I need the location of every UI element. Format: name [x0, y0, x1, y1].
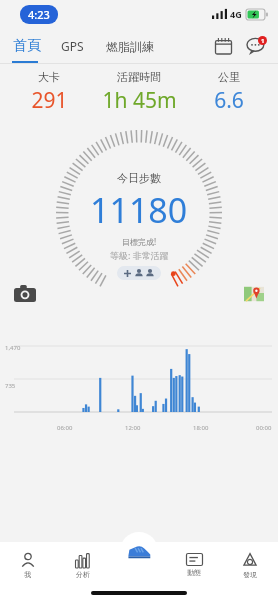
staticText: 1,470 — [5, 344, 21, 352]
staticText: 等級: 非常活躍 — [110, 249, 169, 261]
staticText: 公里 — [218, 70, 240, 84]
button[interactable]: 活躍時間 — [90, 70, 188, 115]
staticText: 735 — [5, 382, 16, 390]
button[interactable]: 我 — [0, 542, 55, 588]
staticText: 291 — [31, 86, 68, 115]
button[interactable]: Start workout — [120, 532, 158, 570]
staticText: 1 — [261, 37, 265, 45]
staticText: 分析 — [76, 570, 90, 579]
button[interactable]: 首頁 — [10, 33, 44, 59]
button[interactable]: Messages — [242, 31, 272, 61]
button[interactable]: 大卡 — [8, 70, 90, 115]
button[interactable]: Map — [242, 282, 266, 306]
staticText: 1h 45m — [102, 86, 177, 115]
staticText: 我 — [24, 570, 31, 579]
button[interactable]: 分析 — [55, 542, 110, 588]
staticText: 發現 — [243, 570, 257, 579]
staticText: GPS — [61, 38, 84, 54]
button[interactable]: 發現 — [222, 542, 278, 588]
button[interactable]: 燃脂訓練 — [103, 35, 157, 58]
staticText: 18:00 — [193, 424, 209, 432]
staticText: 00:00 — [256, 424, 272, 432]
button[interactable]: Camera — [12, 280, 38, 306]
button[interactable]: 動態 — [166, 542, 222, 588]
staticText: 4:23 — [28, 7, 50, 22]
staticText: 活躍時間 — [117, 70, 161, 84]
staticText: 動態 — [187, 568, 201, 577]
staticText: 06:00 — [57, 424, 73, 432]
staticText: 6.6 — [214, 86, 244, 115]
button[interactable]: GPS — [58, 34, 87, 58]
button[interactable]: Add friends — [117, 266, 161, 280]
staticText: 11180 — [90, 187, 188, 233]
button[interactable]: Calendar — [208, 31, 238, 61]
staticText: 4G — [230, 8, 242, 20]
staticText: 首頁 — [13, 37, 41, 55]
staticText: 燃脂訓練 — [106, 39, 154, 54]
button[interactable]: 公里 — [188, 70, 270, 115]
staticText: 目標完成! — [122, 236, 157, 247]
staticText: 今日步數 — [117, 171, 161, 185]
staticText: 大卡 — [38, 70, 60, 84]
staticText: 12:00 — [125, 424, 141, 432]
